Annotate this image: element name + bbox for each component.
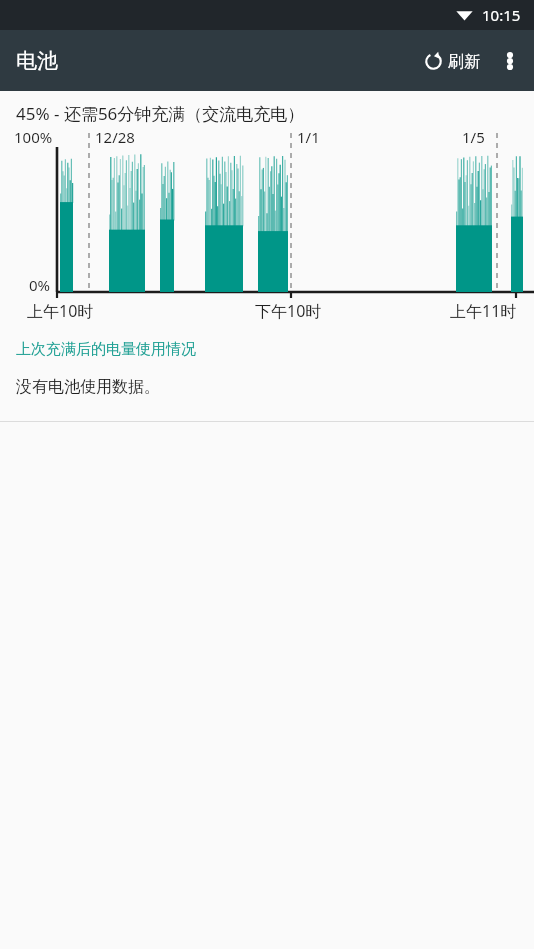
staticText: 10:15 bbox=[482, 5, 521, 25]
other: Wi-Fi bbox=[456, 7, 473, 24]
staticText: 1/5 bbox=[462, 127, 485, 147]
staticText: 下午10时 bbox=[255, 300, 322, 322]
staticText: 上午11时 bbox=[450, 300, 517, 322]
staticText: 1/1 bbox=[297, 127, 320, 147]
staticText: 上次充满后的电量使用情况 bbox=[16, 340, 196, 359]
button[interactable]: More options bbox=[486, 37, 534, 85]
staticText: 上午10时 bbox=[27, 300, 94, 322]
staticText: 刷新 bbox=[448, 52, 480, 72]
staticText: 0% bbox=[29, 275, 51, 295]
staticText: 12/28 bbox=[95, 127, 135, 147]
staticText: 45% - 还需56分钟充满（交流电充电） bbox=[16, 102, 305, 125]
staticText: 电池 bbox=[16, 48, 58, 74]
button[interactable]: 刷新 bbox=[417, 39, 486, 84]
staticText: 100% bbox=[14, 127, 53, 147]
staticText: 没有电池使用数据。 bbox=[16, 377, 160, 397]
button[interactable]: 上次充满后的电量使用情况 bbox=[0, 330, 534, 367]
